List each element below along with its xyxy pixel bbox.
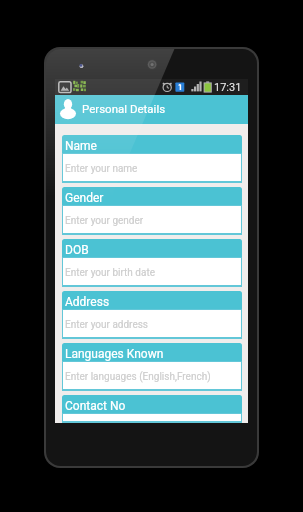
- staticText: 17:31: [214, 81, 242, 94]
- staticText: Name: [65, 139, 97, 153]
- staticText: Address: [65, 295, 110, 309]
- staticText: Enter your birth date: [65, 267, 155, 279]
- staticText: Enter your name: [65, 163, 138, 175]
- button[interactable]: Name: [62, 135, 242, 187]
- staticText: Personal Details: [82, 102, 166, 115]
- staticText: Languages Known: [65, 347, 164, 361]
- button[interactable]: Languages Known: [62, 343, 242, 395]
- staticText: DOB: [65, 243, 89, 257]
- staticText: Enter languages (English,French): [65, 371, 211, 383]
- button[interactable]: Address: [62, 291, 242, 343]
- staticText: Gender: [65, 191, 104, 205]
- button[interactable]: Contact No: [62, 395, 242, 423]
- button[interactable]: DOB: [62, 239, 242, 291]
- button[interactable]: Gender: [62, 187, 242, 239]
- button[interactable]: Profile: [55, 95, 248, 124]
- staticText: Enter your gender: [65, 215, 144, 227]
- staticText: Enter your address: [65, 319, 149, 331]
- staticText: Contact No: [65, 399, 126, 413]
- other: Profile: [60, 99, 76, 117]
